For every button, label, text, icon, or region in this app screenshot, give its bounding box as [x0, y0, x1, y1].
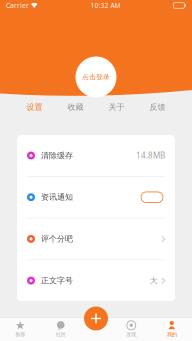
staticText: 10:32 AM: [90, 1, 120, 10]
staticText: 清除缓存: [41, 151, 73, 160]
staticText: 收藏: [67, 102, 83, 112]
staticText: 14.8MB: [136, 150, 165, 161]
staticText: 资讯通知: [41, 192, 73, 202]
button[interactable]: 社区: [40, 313, 81, 341]
button[interactable]: 清除缓存: [17, 135, 175, 176]
staticText: 关于: [108, 102, 124, 112]
button[interactable]: 反馈: [137, 96, 178, 118]
button[interactable]: 关于: [96, 96, 137, 118]
staticText: 社区: [56, 331, 66, 338]
staticText: 反馈: [149, 102, 165, 112]
button[interactable]: 设置: [14, 96, 55, 118]
button[interactable]: 资讯通知: [17, 177, 175, 218]
staticText: 大: [150, 276, 158, 285]
button[interactable]: 发现: [111, 313, 151, 341]
button[interactable]: 正文字号: [17, 260, 175, 301]
staticText: 我的: [167, 331, 177, 338]
button[interactable]: Add: [84, 306, 108, 330]
button[interactable]: 点击登录: [75, 56, 116, 97]
staticText: 点击登录: [82, 73, 110, 81]
button[interactable]: 我的: [151, 313, 192, 341]
button[interactable]: 评个分吧: [17, 218, 175, 259]
staticText: 推荐: [15, 331, 25, 338]
staticText: 正文字号: [41, 276, 73, 285]
staticText: 评个分吧: [41, 234, 73, 244]
staticText: Carrier: [6, 1, 29, 10]
button[interactable]: 收藏: [55, 96, 96, 118]
staticText: 发现: [126, 331, 136, 338]
staticText: 设置: [26, 102, 42, 112]
button[interactable]: 推荐: [0, 313, 40, 341]
